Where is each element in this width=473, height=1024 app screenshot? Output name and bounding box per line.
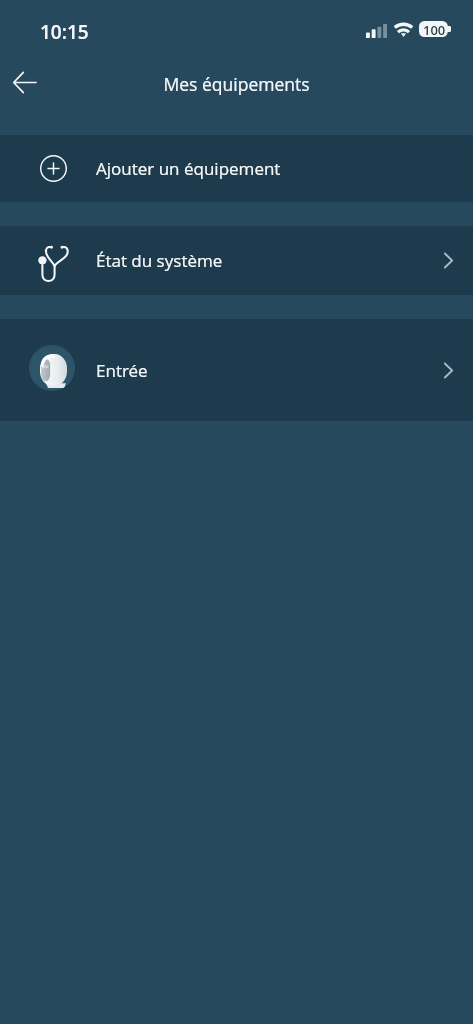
button[interactable]: Back: [0, 58, 48, 106]
staticText: Mes équipements: [163, 72, 310, 96]
button[interactable]: État du système: [0, 226, 473, 295]
staticText: État du système: [96, 249, 223, 272]
staticText: 100: [423, 21, 446, 37]
button[interactable]: Entrée: [0, 319, 473, 421]
staticText: Ajouter un équipement: [96, 157, 281, 180]
staticText: 10:15: [40, 19, 89, 45]
button[interactable]: Ajouter un équipement: [0, 135, 473, 202]
staticText: Entrée: [96, 359, 148, 382]
